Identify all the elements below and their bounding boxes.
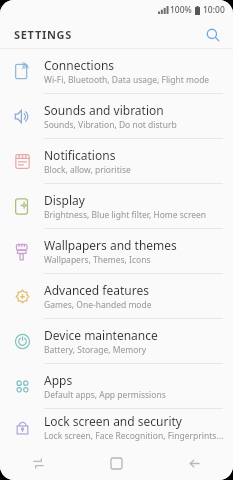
staticText: Default apps, App permissions: [44, 389, 166, 401]
staticText: Sounds, Vibration, Do not disturb: [44, 119, 177, 131]
staticText: Advanced features: [44, 282, 149, 298]
button[interactable]: Sounds and vibration: [0, 94, 233, 138]
staticText: Battery, Storage, Memory: [44, 344, 147, 356]
staticText: Display: [44, 192, 85, 208]
staticText: SETTINGS: [14, 27, 72, 42]
staticText: Brightness, Blue light filter, Home scre…: [44, 209, 207, 221]
button[interactable]: Search: [201, 23, 225, 47]
staticText: 100%: [170, 4, 192, 16]
staticText: Block, allow, prioritise: [44, 164, 131, 176]
staticText: Sounds and vibration: [44, 102, 164, 118]
button[interactable]: Display: [0, 184, 233, 228]
staticText: Wallpapers, Themes, Icons: [44, 254, 151, 266]
staticText: Apps: [44, 372, 73, 388]
staticText: Connections: [44, 57, 115, 73]
staticText: Wallpapers and themes: [44, 237, 177, 253]
button[interactable]: Notifications: [0, 139, 233, 183]
button[interactable]: Connections: [0, 49, 233, 93]
staticText: Games, One-handed mode: [44, 299, 152, 311]
button[interactable]: Wallpapers and themes: [0, 229, 233, 273]
staticText: Notifications: [44, 147, 116, 163]
staticText: Device maintenance: [44, 327, 158, 343]
button[interactable]: Back: [155, 446, 233, 480]
staticText: Wi-Fi, Bluetooth, Data usage, Flight mod…: [44, 74, 210, 86]
staticText: 10:00: [203, 4, 225, 16]
button[interactable]: Advanced features: [0, 274, 233, 318]
button[interactable]: Lock screen and security: [0, 409, 233, 446]
button[interactable]: Recents: [0, 446, 77, 480]
staticText: Lock screen, Face Recognition, Fingerpri…: [44, 430, 224, 442]
button[interactable]: Device maintenance: [0, 319, 233, 363]
button[interactable]: Apps: [0, 364, 233, 408]
button[interactable]: Home: [77, 446, 155, 480]
staticText: Lock screen and security: [44, 413, 182, 429]
